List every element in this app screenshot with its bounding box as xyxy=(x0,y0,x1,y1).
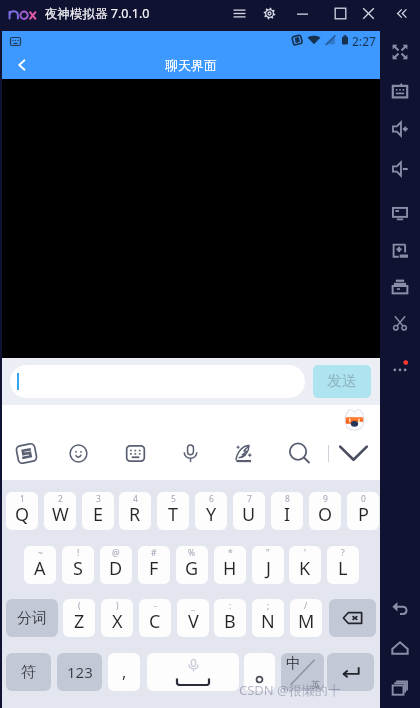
button[interactable]: , xyxy=(108,653,140,691)
button[interactable]: Settings xyxy=(254,0,284,26)
staticText: H xyxy=(223,556,237,581)
button[interactable]: 符 xyxy=(6,653,51,691)
button[interactable]: 1 xyxy=(6,492,38,530)
button[interactable]: Fullscreen xyxy=(382,34,418,70)
button[interactable]: 6 xyxy=(195,492,227,530)
button[interactable]: Close xyxy=(353,0,383,26)
staticText: ? xyxy=(341,547,345,559)
button[interactable]: Shared keyboard xyxy=(382,73,418,109)
button[interactable]: Keyboard layout xyxy=(116,434,154,472)
button[interactable]: Hide keyboard xyxy=(334,434,372,472)
button[interactable]: * xyxy=(214,546,246,584)
staticText: / xyxy=(304,600,308,612)
staticText: 0 xyxy=(361,493,366,505)
button[interactable]: Space xyxy=(147,653,239,691)
button[interactable]: 8 xyxy=(271,492,303,530)
button[interactable] xyxy=(10,365,305,398)
button[interactable]: Collapse sidebar xyxy=(386,0,416,26)
staticText: 5 xyxy=(171,493,176,505)
button[interactable]: Install APK xyxy=(382,233,418,269)
button[interactable]: / xyxy=(290,599,322,637)
staticText: 8 xyxy=(285,493,290,505)
button[interactable]: Volume down xyxy=(382,151,418,187)
button[interactable]: Handwriting xyxy=(224,434,262,472)
button[interactable]: Menu xyxy=(224,0,254,26)
button[interactable]: 2 xyxy=(44,492,76,530)
button[interactable]: ! xyxy=(62,546,94,584)
button[interactable]: - xyxy=(139,599,171,637)
staticText: _ xyxy=(191,600,195,612)
button[interactable]: Enter xyxy=(327,653,374,691)
staticText: P xyxy=(358,502,369,527)
button[interactable]: 123 xyxy=(57,653,102,691)
staticText: Y xyxy=(206,502,217,527)
staticText: @ xyxy=(112,547,120,559)
staticText: ! xyxy=(77,547,80,559)
button[interactable]: 发送 xyxy=(313,365,371,398)
button[interactable]: Back xyxy=(382,590,418,626)
button[interactable]: 分词 xyxy=(6,599,58,637)
button[interactable]: Home xyxy=(382,630,418,666)
button[interactable]: Back xyxy=(8,51,36,79)
staticText: U xyxy=(242,502,256,527)
button[interactable]: Sticker xyxy=(343,408,366,431)
button[interactable]: % xyxy=(176,546,208,584)
staticText: G xyxy=(185,556,199,581)
button[interactable]: Screen xyxy=(382,196,418,232)
button[interactable]: 0 xyxy=(347,492,379,530)
button[interactable]: Volume up xyxy=(382,111,418,147)
staticText: 3 xyxy=(96,493,101,505)
button[interactable]: Recent apps xyxy=(382,670,418,706)
staticText: 符 xyxy=(21,663,36,682)
staticText: 7 xyxy=(247,493,252,505)
staticText: % xyxy=(188,547,196,559)
staticText: 6 xyxy=(209,493,214,505)
button[interactable]: Emoji xyxy=(59,434,97,472)
button[interactable]: More tools xyxy=(382,350,418,386)
button[interactable]: 5 xyxy=(157,492,189,530)
button[interactable]: Screenshot xyxy=(382,305,418,341)
button[interactable]: @ xyxy=(100,546,132,584)
button[interactable]: ( xyxy=(63,599,95,637)
staticText: 分词 xyxy=(17,609,47,628)
button[interactable]: 4 xyxy=(119,492,151,530)
staticText: ' xyxy=(304,547,306,559)
button[interactable]: 7 xyxy=(233,492,265,530)
button[interactable]: ? xyxy=(327,546,359,584)
button[interactable]: Switch language xyxy=(281,653,324,691)
staticText: , xyxy=(122,661,127,683)
button[interactable]: Shared folder xyxy=(382,268,418,304)
button[interactable]: _ xyxy=(177,599,209,637)
staticText: O xyxy=(318,502,333,527)
button[interactable]: : xyxy=(214,599,246,637)
staticText: 2 xyxy=(58,493,63,505)
button[interactable]: ~ xyxy=(24,546,56,584)
staticText: 123 xyxy=(67,662,93,682)
button[interactable]: ) xyxy=(101,599,133,637)
staticText: 聊天界面 xyxy=(165,57,217,73)
button[interactable]: ; xyxy=(252,599,284,637)
staticText: 4 xyxy=(133,493,138,505)
button[interactable]: " xyxy=(252,546,284,584)
button[interactable]: Backspace xyxy=(329,599,376,637)
staticText: A xyxy=(34,556,46,581)
button[interactable]: 9 xyxy=(309,492,341,530)
button[interactable]: Period xyxy=(244,653,275,691)
staticText: X xyxy=(112,609,123,634)
staticText: * xyxy=(228,547,233,559)
staticText: 1 xyxy=(20,493,25,505)
staticText: ( xyxy=(78,600,81,612)
button[interactable]: Minimize xyxy=(287,0,317,26)
staticText: M xyxy=(298,609,315,634)
button[interactable]: # xyxy=(138,546,170,584)
staticText: W xyxy=(52,502,69,527)
button[interactable]: 3 xyxy=(82,492,114,530)
button[interactable]: Search xyxy=(280,434,318,472)
staticText: N xyxy=(261,609,275,634)
staticText: L xyxy=(338,556,348,581)
staticText: 发送 xyxy=(327,372,357,391)
button[interactable]: Maximize xyxy=(325,0,355,26)
button[interactable]: Sogou keyboard xyxy=(7,434,45,472)
button[interactable]: ' xyxy=(289,546,321,584)
button[interactable]: Voice input xyxy=(171,434,209,472)
